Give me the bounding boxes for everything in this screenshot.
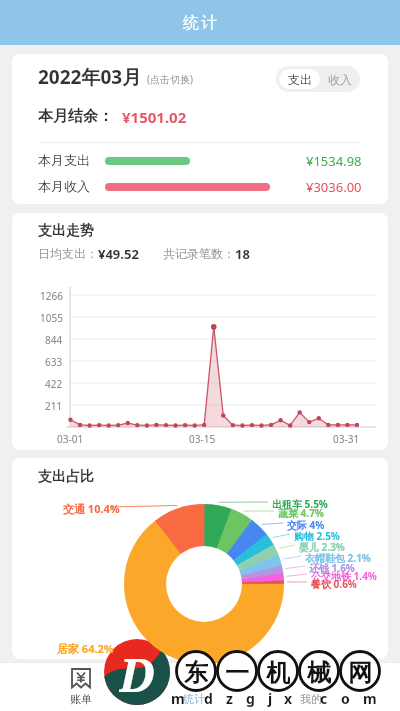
staticText: m (363, 689, 377, 708)
button[interactable]: 支出 (279, 69, 320, 89)
staticText: 2022年03月 (38, 64, 142, 90)
staticText: 婴儿 2.3% (299, 540, 345, 554)
button[interactable]: 账单 (56, 656, 106, 710)
staticText: d (204, 689, 213, 708)
staticText: 03-01 (57, 432, 84, 446)
staticText: 衣帽鞋包 2.1% (305, 551, 371, 565)
staticText: j (268, 689, 273, 708)
staticText: 211 (45, 399, 63, 413)
staticText: 机 (266, 658, 290, 685)
staticText: 统计 (182, 13, 218, 33)
staticText: 本月结余： (38, 107, 113, 126)
staticText: 本月收入 (38, 178, 90, 194)
staticText: 日均支出： (38, 246, 98, 261)
staticText: ¥3036.00 (306, 178, 362, 196)
staticText: 422 (45, 377, 63, 391)
staticText: 网 (348, 658, 372, 685)
staticText: 公交地铁 1.4% (311, 569, 377, 583)
staticText: 餐饮 0.6% (311, 577, 357, 591)
staticText: (点击切换) (147, 72, 193, 86)
staticText: 购物 2.5% (294, 529, 340, 543)
staticText: 交际 4% (287, 518, 325, 532)
staticText: 东 (184, 658, 208, 685)
staticText: 共记录笔数： (163, 246, 235, 261)
staticText: 633 (45, 355, 63, 369)
staticText: m (171, 689, 185, 708)
staticText: 03-15 (189, 432, 216, 446)
staticText: ¥1501.02 (122, 107, 187, 127)
button[interactable]: 我的 (286, 656, 336, 710)
staticText: 账单 (70, 692, 92, 706)
staticText: D (119, 643, 155, 701)
staticText: 支出占比 (38, 468, 94, 486)
staticText: 统计 (183, 692, 205, 706)
staticText: ¥49.52 (98, 245, 139, 263)
staticText: c (320, 689, 328, 708)
staticText: o (341, 689, 350, 708)
staticText: 03-31 (333, 432, 360, 446)
staticText: 我的 (300, 692, 322, 706)
staticText: 械 (307, 658, 331, 685)
staticText: 1266 (40, 289, 63, 303)
staticText: 出租车 5.5% (272, 497, 328, 511)
staticText: 居家 64.2% (57, 641, 114, 656)
staticText: x (284, 689, 293, 708)
staticText: 18 (235, 245, 250, 263)
staticText: 还钱 1.6% (309, 561, 355, 575)
staticText: 支出 (288, 72, 312, 87)
staticText: 1055 (40, 311, 63, 325)
staticText: ¥1534.98 (306, 152, 362, 170)
staticText: 蔬菜 4.7% (278, 506, 324, 520)
staticText: 交通 10.4% (63, 501, 120, 516)
staticText: 收入 (328, 72, 352, 87)
staticText: 844 (45, 333, 63, 347)
staticText: 一 (225, 658, 249, 685)
staticText: g (246, 689, 255, 708)
staticText: z (226, 689, 233, 708)
staticText: 本月支出 (38, 152, 90, 168)
staticText: 支出走势 (38, 222, 94, 240)
button[interactable]: 收入 (320, 66, 360, 92)
button[interactable]: 统计 (0, 0, 400, 45)
button[interactable]: 统计 (169, 656, 219, 710)
